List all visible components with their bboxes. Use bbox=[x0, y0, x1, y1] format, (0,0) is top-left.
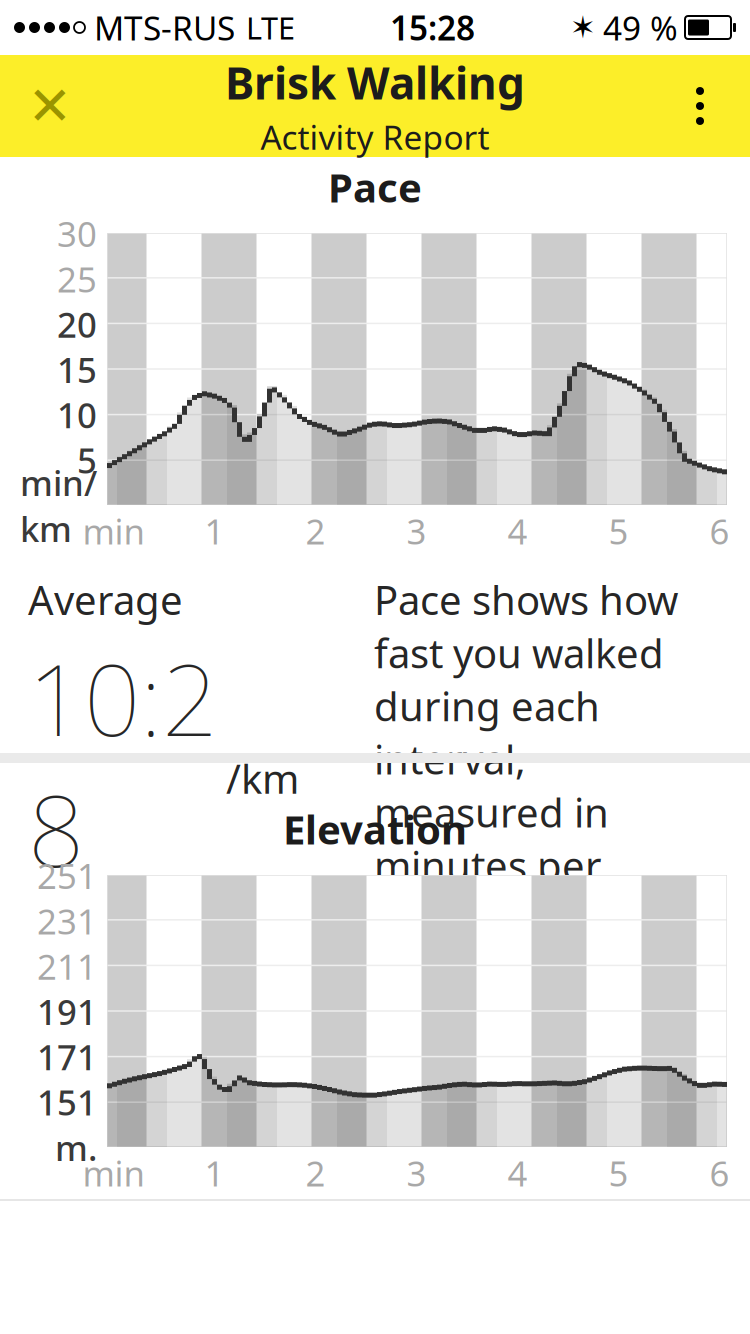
button[interactable]: More options bbox=[650, 55, 750, 157]
staticText: Average bbox=[28, 573, 183, 626]
staticText: min bbox=[82, 508, 144, 554]
staticText: 4 bbox=[507, 1150, 527, 1196]
staticText: 10:28 bbox=[28, 632, 218, 894]
staticText: 4 bbox=[507, 508, 527, 554]
staticText: 6 bbox=[709, 1150, 729, 1196]
staticText: 2 bbox=[305, 508, 325, 554]
staticText: 5 bbox=[608, 1150, 628, 1196]
staticText: 1 bbox=[204, 508, 224, 554]
button[interactable]: Close bbox=[0, 55, 100, 157]
staticText: 171 bbox=[37, 1034, 97, 1080]
staticText: 5 bbox=[608, 508, 628, 554]
staticText: 231 bbox=[37, 898, 97, 944]
staticText: 49 % bbox=[603, 5, 678, 50]
staticText: 1 bbox=[204, 1150, 224, 1196]
staticText: Elevation bbox=[283, 802, 467, 855]
staticText: /km bbox=[226, 752, 299, 805]
staticText: 3 bbox=[406, 508, 426, 554]
staticText: ✶ bbox=[570, 10, 596, 45]
staticText: ✕ bbox=[27, 76, 72, 136]
staticText: Activity Report bbox=[260, 115, 489, 159]
staticText: 30 bbox=[57, 211, 97, 257]
staticText: m. bbox=[55, 1124, 97, 1170]
staticText: MTS-RUS bbox=[94, 5, 235, 50]
staticText: 251 bbox=[37, 853, 97, 899]
staticText: min/km bbox=[20, 459, 97, 551]
staticText: 2 bbox=[305, 1150, 325, 1196]
staticText: LTE bbox=[246, 7, 295, 48]
staticText: 151 bbox=[37, 1079, 97, 1125]
staticText: 191 bbox=[37, 988, 97, 1034]
staticText: 10 bbox=[57, 392, 97, 438]
staticText: Pace bbox=[328, 160, 422, 213]
staticText: 25 bbox=[57, 256, 97, 302]
staticText: 3 bbox=[406, 1150, 426, 1196]
staticText: 15 bbox=[57, 346, 97, 392]
staticText: min bbox=[82, 1150, 144, 1196]
staticText: Pace shows how fast you walked during ea… bbox=[374, 573, 678, 945]
staticText: 211 bbox=[37, 943, 97, 989]
staticText: 15:28 bbox=[390, 5, 475, 50]
staticText: Brisk Walking bbox=[225, 53, 525, 112]
staticText: 6 bbox=[709, 508, 729, 554]
staticText: 20 bbox=[57, 301, 97, 347]
staticText: 5 bbox=[77, 437, 97, 483]
